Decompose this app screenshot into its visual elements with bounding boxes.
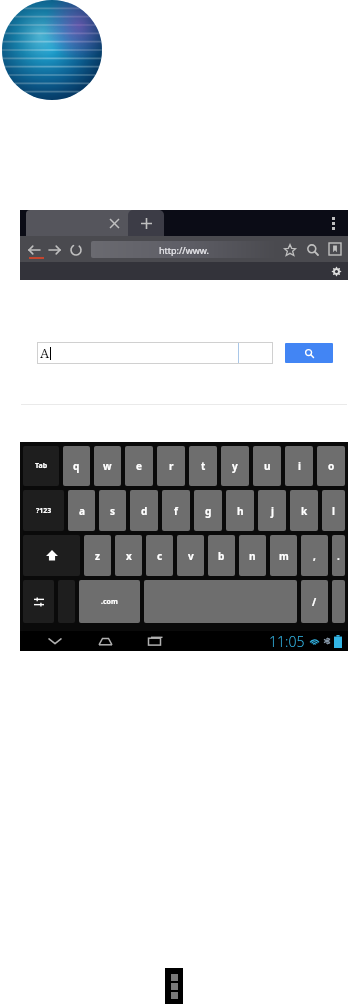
button[interactable]: Close tab	[102, 211, 126, 235]
button[interactable]: b	[208, 535, 235, 576]
button[interactable]: m	[270, 535, 297, 576]
staticText: g	[205, 504, 212, 518]
staticText: A	[40, 344, 50, 362]
staticText: m	[279, 549, 289, 563]
staticText: j	[271, 504, 274, 518]
staticText: d	[141, 504, 148, 518]
button[interactable]: http://www.	[91, 241, 276, 258]
button[interactable]: Bookmark	[282, 242, 297, 257]
staticText: 11:05	[269, 632, 305, 651]
button[interactable]: v	[177, 535, 204, 576]
button[interactable]: s	[99, 490, 126, 531]
staticText: x	[126, 549, 132, 563]
button[interactable]: Hide keyboard	[42, 631, 68, 651]
staticText: Tab	[35, 461, 48, 471]
staticText: o	[328, 459, 335, 473]
button[interactable]: i	[285, 446, 313, 486]
button[interactable]: h	[226, 490, 254, 531]
button[interactable]: shift	[23, 535, 80, 576]
staticText: e	[136, 459, 142, 473]
button[interactable]: q	[63, 446, 90, 486]
button[interactable]	[332, 580, 345, 623]
staticText: a	[79, 504, 85, 518]
staticText: ?123	[36, 506, 52, 516]
button[interactable]: e	[125, 446, 153, 486]
button[interactable]: n	[239, 535, 266, 576]
button[interactable]: Search	[285, 343, 333, 363]
button[interactable]: z	[84, 535, 111, 576]
staticText: c	[157, 549, 163, 563]
staticText: r	[169, 459, 174, 473]
staticText: h	[237, 504, 244, 518]
button[interactable]: Bookmarks	[328, 242, 342, 256]
staticText: b	[218, 549, 225, 563]
button[interactable]: Reload	[68, 242, 83, 257]
button[interactable]: u	[253, 446, 281, 486]
button[interactable]: d	[130, 490, 158, 531]
button[interactable]: o	[317, 446, 345, 486]
button[interactable]: Recent apps	[142, 631, 168, 651]
button[interactable]	[26, 210, 136, 236]
button[interactable]: w	[94, 446, 121, 486]
button[interactable]: Back	[26, 242, 41, 257]
staticText: n	[249, 549, 256, 563]
staticText: l	[332, 504, 335, 518]
button[interactable]: a	[68, 490, 95, 531]
staticText: s	[110, 504, 116, 518]
button[interactable]: l	[322, 490, 345, 531]
button[interactable]: Search	[305, 242, 320, 257]
button[interactable]: New tab	[128, 210, 164, 236]
button[interactable]: Menu	[324, 214, 342, 232]
button[interactable]: .	[332, 535, 345, 576]
staticText: t	[201, 459, 206, 473]
staticText: v	[188, 549, 194, 563]
button[interactable]: ,	[301, 535, 328, 576]
button[interactable]: gear	[23, 580, 54, 623]
staticText: u	[264, 459, 271, 473]
button[interactable]: x	[115, 535, 142, 576]
staticText: f	[174, 504, 178, 518]
staticText: .com	[101, 597, 118, 607]
staticText: /	[312, 595, 317, 609]
button[interactable]: r	[157, 446, 185, 486]
staticText: w	[103, 459, 112, 473]
button[interactable]: ?123	[23, 490, 64, 531]
button[interactable]: t	[189, 446, 217, 486]
staticText: y	[232, 459, 238, 473]
button[interactable]: .com	[79, 580, 140, 623]
button[interactable]: A	[37, 342, 273, 364]
button[interactable]: y	[221, 446, 249, 486]
button[interactable]: Settings	[329, 264, 343, 278]
staticText: i	[298, 459, 301, 473]
button[interactable]: Tab	[23, 446, 59, 486]
button[interactable]: c	[146, 535, 173, 576]
staticText: q	[73, 459, 80, 473]
staticText: k	[301, 504, 308, 518]
staticText: http://www.	[159, 244, 209, 256]
button[interactable]: k	[290, 490, 318, 531]
button[interactable]: Forward	[47, 242, 62, 257]
staticText: z	[95, 549, 100, 563]
button[interactable]: j	[258, 490, 286, 531]
button[interactable]: /	[301, 580, 328, 623]
button[interactable]: Home	[92, 631, 118, 651]
button[interactable]: f	[162, 490, 190, 531]
staticText: ,	[313, 549, 316, 563]
button[interactable]: More options	[165, 968, 183, 1004]
staticText: .	[337, 549, 340, 563]
button[interactable]: g	[194, 490, 222, 531]
